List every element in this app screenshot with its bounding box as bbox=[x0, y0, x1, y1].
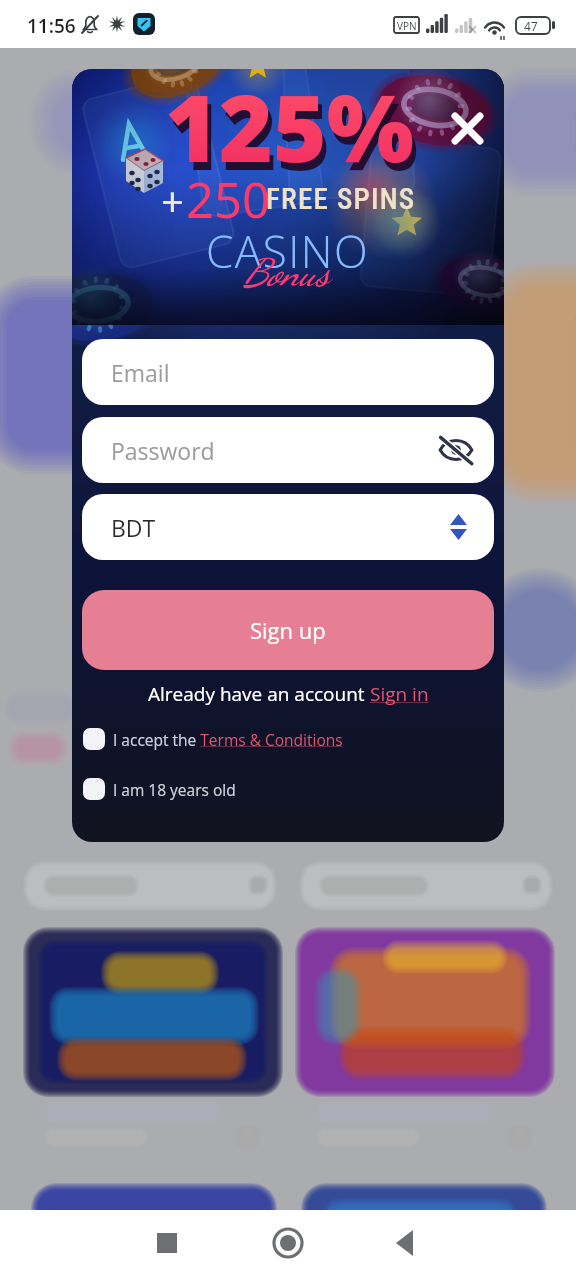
staticText: Email bbox=[111, 357, 170, 388]
staticText: I am 18 years old bbox=[113, 779, 236, 800]
button[interactable]: Back bbox=[372, 1210, 438, 1276]
staticText: BDT bbox=[111, 512, 156, 543]
staticText: I accept the Terms & Conditions bbox=[113, 729, 343, 750]
staticText: Already have an account bbox=[148, 681, 370, 707]
staticText: 125% bbox=[165, 69, 414, 189]
staticText: Password bbox=[111, 435, 215, 466]
staticText: 250 bbox=[186, 166, 271, 233]
staticText: FREE SPINS bbox=[266, 182, 416, 216]
staticText: + bbox=[161, 173, 184, 227]
button[interactable]: Sign up bbox=[82, 590, 494, 670]
button[interactable]: Email bbox=[82, 339, 494, 405]
button[interactable]: Sign in bbox=[370, 681, 429, 707]
staticText: Sign up bbox=[250, 615, 326, 645]
button[interactable]: Password bbox=[82, 417, 494, 483]
staticText: 125% bbox=[169, 72, 418, 197]
button[interactable]: Close bbox=[439, 100, 495, 156]
button[interactable]: I accept the Terms & Conditions bbox=[83, 728, 343, 750]
staticText: Sign in bbox=[370, 681, 429, 707]
staticText: VPN bbox=[397, 19, 417, 33]
button[interactable]: Recent apps bbox=[134, 1210, 200, 1276]
button[interactable]: Home bbox=[255, 1210, 321, 1276]
button[interactable]: BDT bbox=[82, 494, 494, 560]
staticText: 47 bbox=[524, 18, 538, 34]
staticText: 11:56 bbox=[27, 13, 76, 39]
button[interactable]: I am 18 years old bbox=[83, 778, 236, 800]
staticText: CASINO bbox=[206, 221, 370, 281]
button[interactable]: Show password bbox=[438, 432, 474, 468]
staticText: Bonus bbox=[242, 250, 329, 296]
